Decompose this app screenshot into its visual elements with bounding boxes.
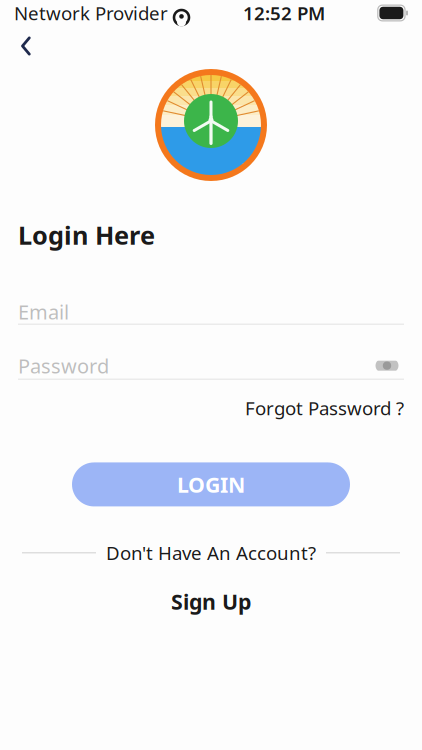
button[interactable]: Back — [4, 26, 48, 66]
staticText: Forgot Password ? — [245, 396, 404, 420]
button[interactable]: Show password — [370, 353, 404, 379]
staticText: Email — [18, 298, 69, 325]
staticText: Password — [18, 352, 109, 379]
staticText: 12:52 PM — [243, 1, 325, 25]
button[interactable]: Forgot Password ? — [245, 392, 404, 424]
staticText: Network Provider — [14, 1, 168, 25]
staticText: Don't Have An Account? — [106, 540, 316, 565]
staticText: LOGIN — [177, 470, 245, 499]
staticText: J — [209, 100, 213, 118]
staticText: W — [204, 100, 217, 118]
staticText: Sign Up — [171, 587, 251, 615]
staticText: A — [206, 100, 215, 118]
staticText: M — [205, 100, 217, 118]
staticText: U — [206, 100, 216, 118]
staticText: Y — [207, 100, 215, 118]
button[interactable]: Sign Up — [153, 583, 269, 619]
staticText: Login Here — [18, 218, 155, 252]
button[interactable]: LOGIN — [72, 462, 350, 506]
staticText: A — [206, 100, 215, 118]
staticText: A — [206, 100, 215, 118]
staticText: S — [207, 100, 214, 118]
staticText: R — [206, 100, 215, 118]
